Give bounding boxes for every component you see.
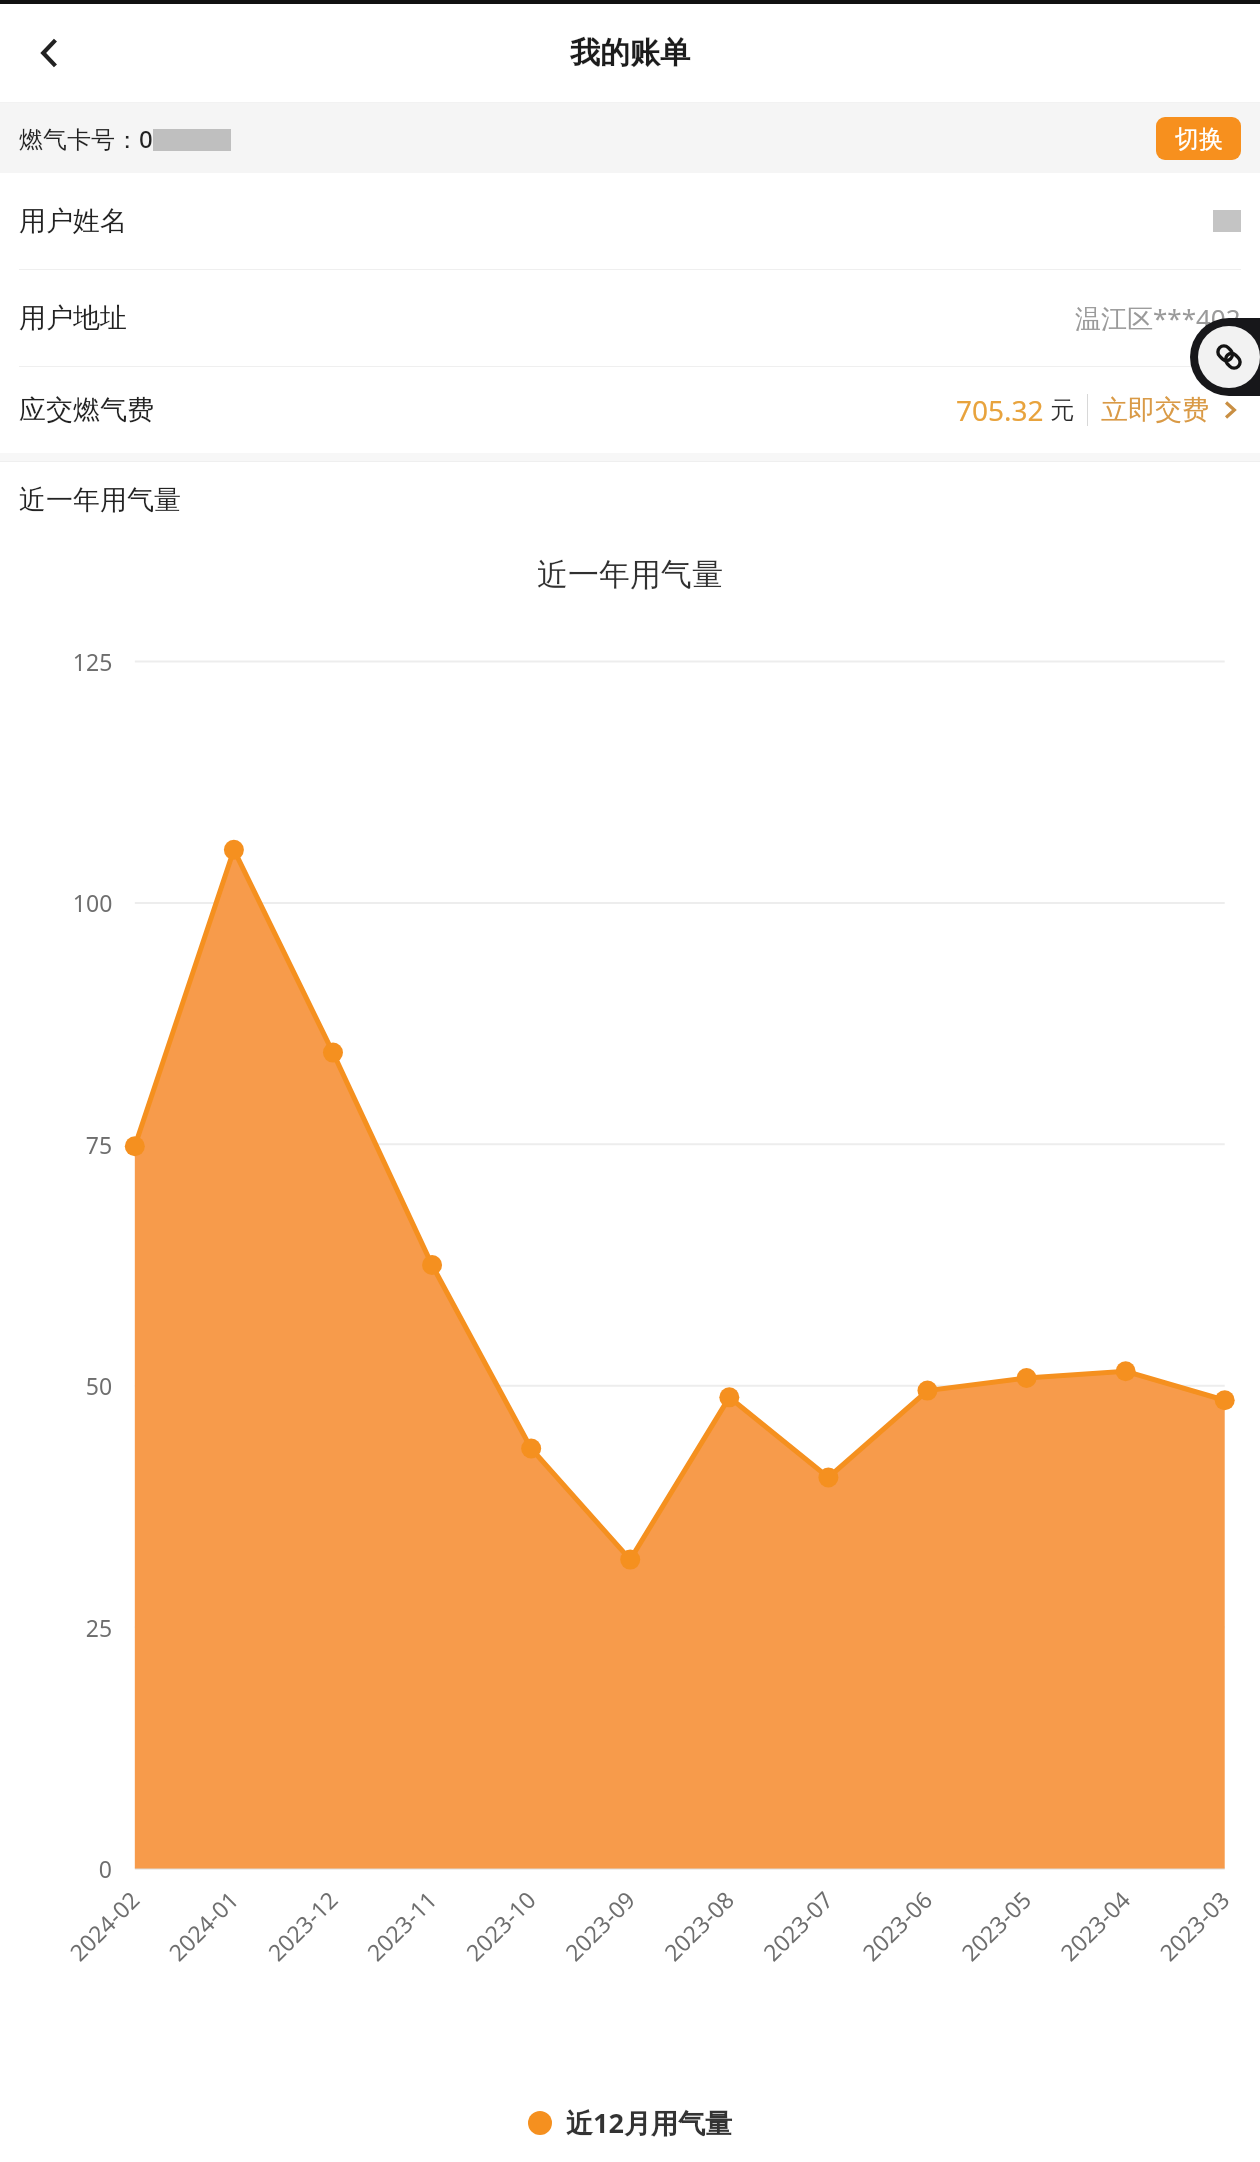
staticText: 温江区***402 — [1075, 300, 1241, 336]
button[interactable]: 切换 — [1156, 117, 1241, 160]
button[interactable]: Link — [1190, 318, 1260, 396]
staticText: 用户地址 — [19, 301, 127, 335]
staticText: 705.32 — [956, 391, 1044, 429]
staticText: 切换 — [1175, 124, 1223, 154]
staticText: 近一年用气量 — [537, 555, 723, 594]
staticText: 应交燃气费 — [19, 393, 154, 427]
button[interactable]: 立即交费 — [1101, 393, 1241, 427]
staticText: 元 — [1050, 395, 1074, 425]
button[interactable]: 用户地址 — [0, 270, 1260, 366]
staticText: 用户姓名 — [19, 204, 127, 238]
button[interactable]: 用户姓名 — [0, 173, 1260, 269]
button[interactable]: Back — [20, 23, 80, 83]
staticText: 我的账单 — [570, 34, 690, 72]
staticText: 立即交费 — [1101, 393, 1209, 427]
staticText: 近一年用气量 — [19, 483, 181, 517]
staticText: 近12月用气量 — [566, 2104, 732, 2141]
staticText: 燃气卡号：0 — [19, 122, 153, 155]
